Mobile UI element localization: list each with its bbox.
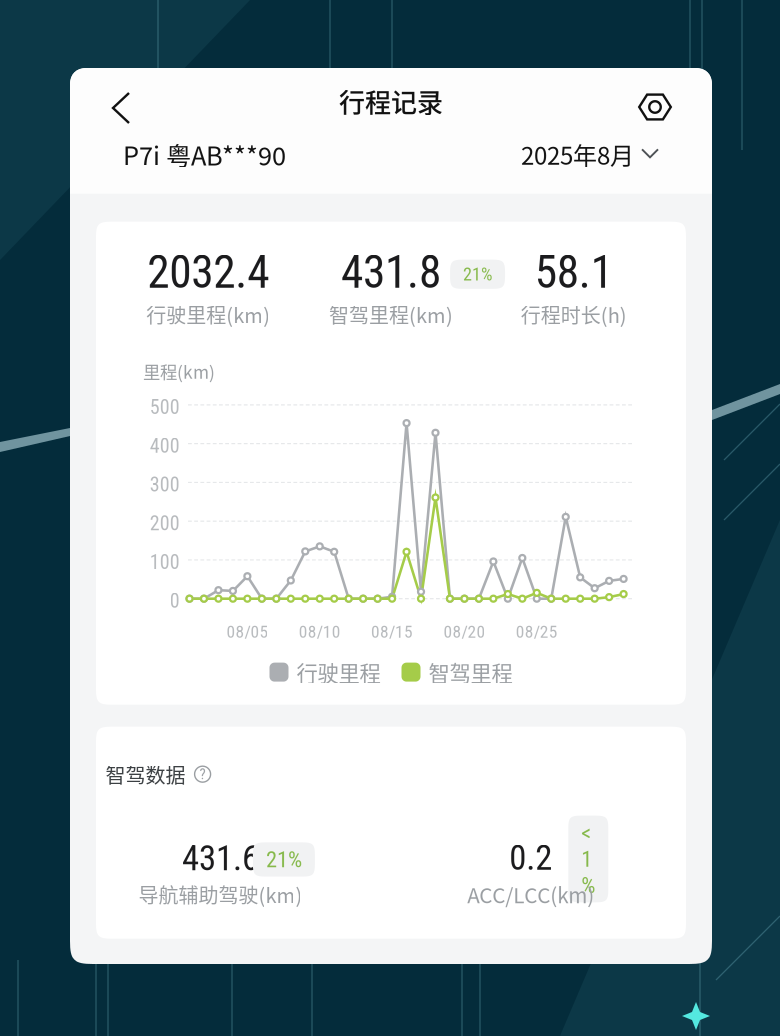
staticText: 431.6 — [182, 838, 259, 879]
staticText: 21% — [463, 264, 492, 285]
staticText: 0.2 — [509, 838, 552, 878]
button[interactable]: Settings — [621, 74, 689, 140]
staticText: 行程时长(h) — [521, 300, 627, 329]
staticText: 500 — [150, 395, 180, 419]
button[interactable]: About assisted-driving data — [194, 765, 212, 783]
staticText: 200 — [150, 512, 180, 535]
staticText: 0 — [170, 589, 180, 613]
staticText: 300 — [150, 473, 180, 496]
staticText: 行驶里程 — [296, 657, 380, 688]
staticText: 08/10 — [299, 622, 341, 642]
button[interactable]: Back — [92, 75, 150, 141]
staticText: 100 — [150, 550, 180, 574]
staticText: <1% — [581, 820, 595, 898]
staticText: 08/20 — [443, 622, 485, 642]
staticText: 智驾里程 — [428, 657, 512, 688]
staticText: P7i 粤AB***90 — [123, 136, 286, 173]
staticText: 08/15 — [371, 622, 413, 642]
staticText: 智驾里程(km) — [329, 300, 453, 329]
button[interactable]: 2025年8月 — [521, 137, 659, 172]
staticText: 431.8 — [341, 246, 441, 299]
staticText: 智驾数据 — [106, 760, 186, 789]
staticText: 行驶里程(km) — [146, 300, 270, 329]
staticText: 里程(km) — [143, 359, 215, 384]
staticText: 08/05 — [226, 622, 268, 642]
staticText: 行程记录 — [339, 82, 443, 120]
staticText: 58.1 — [535, 246, 613, 299]
staticText: ? — [200, 766, 206, 783]
staticText: 2025年8月 — [521, 137, 634, 172]
staticText: 2032.4 — [147, 246, 269, 299]
staticText: 导航辅助驾驶(km) — [138, 880, 302, 909]
staticText: 400 — [150, 434, 180, 457]
staticText: 08/25 — [516, 622, 558, 642]
staticText: 21% — [266, 846, 302, 873]
staticText: ACC/LCC(km) — [467, 879, 594, 909]
